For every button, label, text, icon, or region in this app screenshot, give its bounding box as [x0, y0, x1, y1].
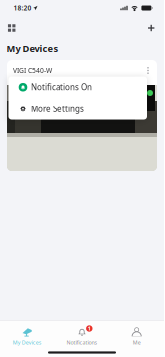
staticText: 1	[88, 325, 91, 332]
button[interactable]: More Settings	[8, 98, 147, 119]
button[interactable]: Add device	[143, 20, 159, 36]
staticText: VIGI C540-W	[13, 66, 52, 75]
staticText: Me	[133, 339, 141, 346]
button[interactable]: My Devices	[0, 326, 55, 346]
button[interactable]: Notifications On	[8, 76, 147, 98]
staticText: My Devices	[6, 42, 58, 55]
staticText: Notifications On	[31, 82, 92, 92]
button[interactable]: Device grid	[4, 20, 20, 36]
button[interactable]: Me	[109, 326, 164, 346]
button[interactable]: 1	[55, 326, 109, 346]
staticText: 18:20	[13, 4, 31, 12]
staticText: Notifications	[66, 339, 97, 346]
staticText: More Settings	[31, 103, 84, 114]
staticText: My Devices	[13, 339, 42, 346]
button[interactable]: More options	[142, 58, 154, 83]
